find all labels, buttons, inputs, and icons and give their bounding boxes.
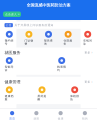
staticText: 更多 › — [84, 80, 92, 84]
staticText: 就医服务 — [4, 50, 20, 55]
staticText: 健康 — [58, 117, 64, 120]
button[interactable]: 用药提醒 — [36, 86, 48, 101]
staticText: 体检报告 — [70, 94, 79, 101]
staticText: 健康管理 — [4, 79, 20, 84]
button[interactable]: 在线问诊 — [82, 31, 93, 46]
button[interactable]: 报告查询 — [43, 31, 54, 46]
button[interactable]: 健康档案 — [3, 86, 15, 101]
button[interactable]: 智能导诊 — [3, 57, 15, 72]
button[interactable]: 门诊缴费 — [23, 31, 35, 46]
staticText: 就医 — [33, 117, 39, 120]
staticText: 检查预约 — [57, 65, 66, 72]
staticText: 在线问诊 — [83, 39, 92, 46]
staticText: 更多 › — [84, 51, 92, 54]
staticText: 用药提醒 — [37, 94, 46, 101]
button[interactable]: 首页 — [0, 110, 24, 120]
staticText: 报告查询 — [44, 39, 53, 46]
button[interactable]: 预约挂号 — [3, 31, 15, 46]
staticText: 全国流感中医药防治方案 — [26, 3, 70, 7]
button[interactable]: 就医 — [24, 110, 48, 120]
button[interactable]: 健康 — [48, 110, 73, 120]
staticText: 门诊缴费 — [24, 39, 33, 46]
staticText: 住院服务 — [64, 39, 73, 46]
staticText: 预约挂号 — [5, 39, 14, 46]
staticText: 健康档案 — [5, 94, 14, 101]
button[interactable]: 住院服务 — [62, 31, 74, 46]
staticText: 我的 — [82, 117, 88, 120]
button[interactable]: 体检报告 — [69, 86, 80, 101]
button[interactable]: 我的 — [73, 110, 97, 120]
staticText: 公告 — [6, 23, 12, 27]
staticText: 关于开展线上问诊服务的通知 — [14, 23, 53, 27]
staticText: 智能导诊 — [5, 65, 14, 72]
button[interactable]: 检查预约 — [56, 57, 67, 72]
staticText: 首页 — [9, 117, 15, 120]
staticText: 点击进入 » — [5, 12, 19, 16]
